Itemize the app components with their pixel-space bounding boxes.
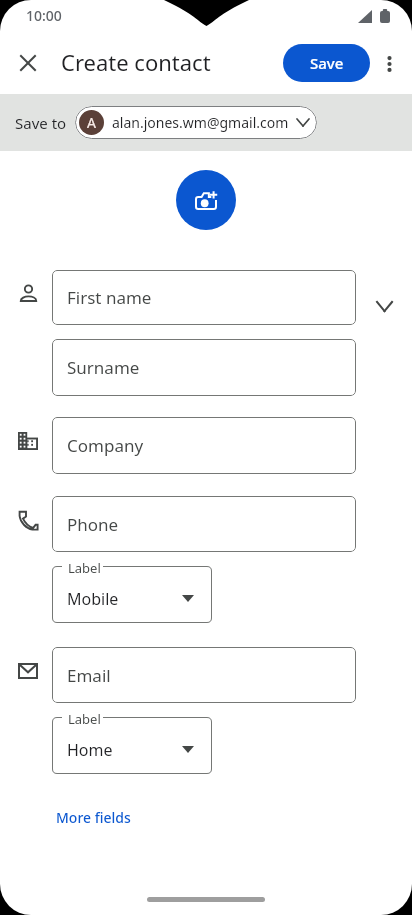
button[interactable]: Company [52,417,356,474]
staticText: Label [68,559,101,577]
button[interactable]: Home [52,717,212,774]
button[interactable]: Close [4,39,52,87]
staticText: 10:00 [26,6,62,25]
staticText: Create contact [61,47,211,77]
staticText: Email [67,664,111,687]
button[interactable]: Save [283,44,370,82]
staticText: Surname [67,356,140,379]
button[interactable]: A [75,106,317,139]
button[interactable]: More options [367,41,412,86]
button[interactable]: Add photo [176,170,236,230]
button[interactable]: Phone [52,496,356,552]
staticText: alan.jones.wm@gmail.com [112,113,289,132]
staticText: Phone [67,513,119,536]
staticText: More fields [56,808,131,827]
staticText: Mobile [67,588,119,610]
staticText: Label [68,710,101,728]
button[interactable]: Expand name fields [362,284,406,328]
button[interactable]: First name [52,270,356,325]
staticText: A [87,113,96,132]
staticText: Save [310,53,344,73]
button[interactable]: Surname [52,339,356,396]
button[interactable]: Email [52,647,356,703]
staticText: First name [67,286,152,309]
staticText: Company [67,434,144,457]
button[interactable]: Mobile [52,566,212,623]
button[interactable]: More fields [44,803,143,832]
staticText: Save to [15,113,67,133]
staticText: Home [67,739,113,761]
